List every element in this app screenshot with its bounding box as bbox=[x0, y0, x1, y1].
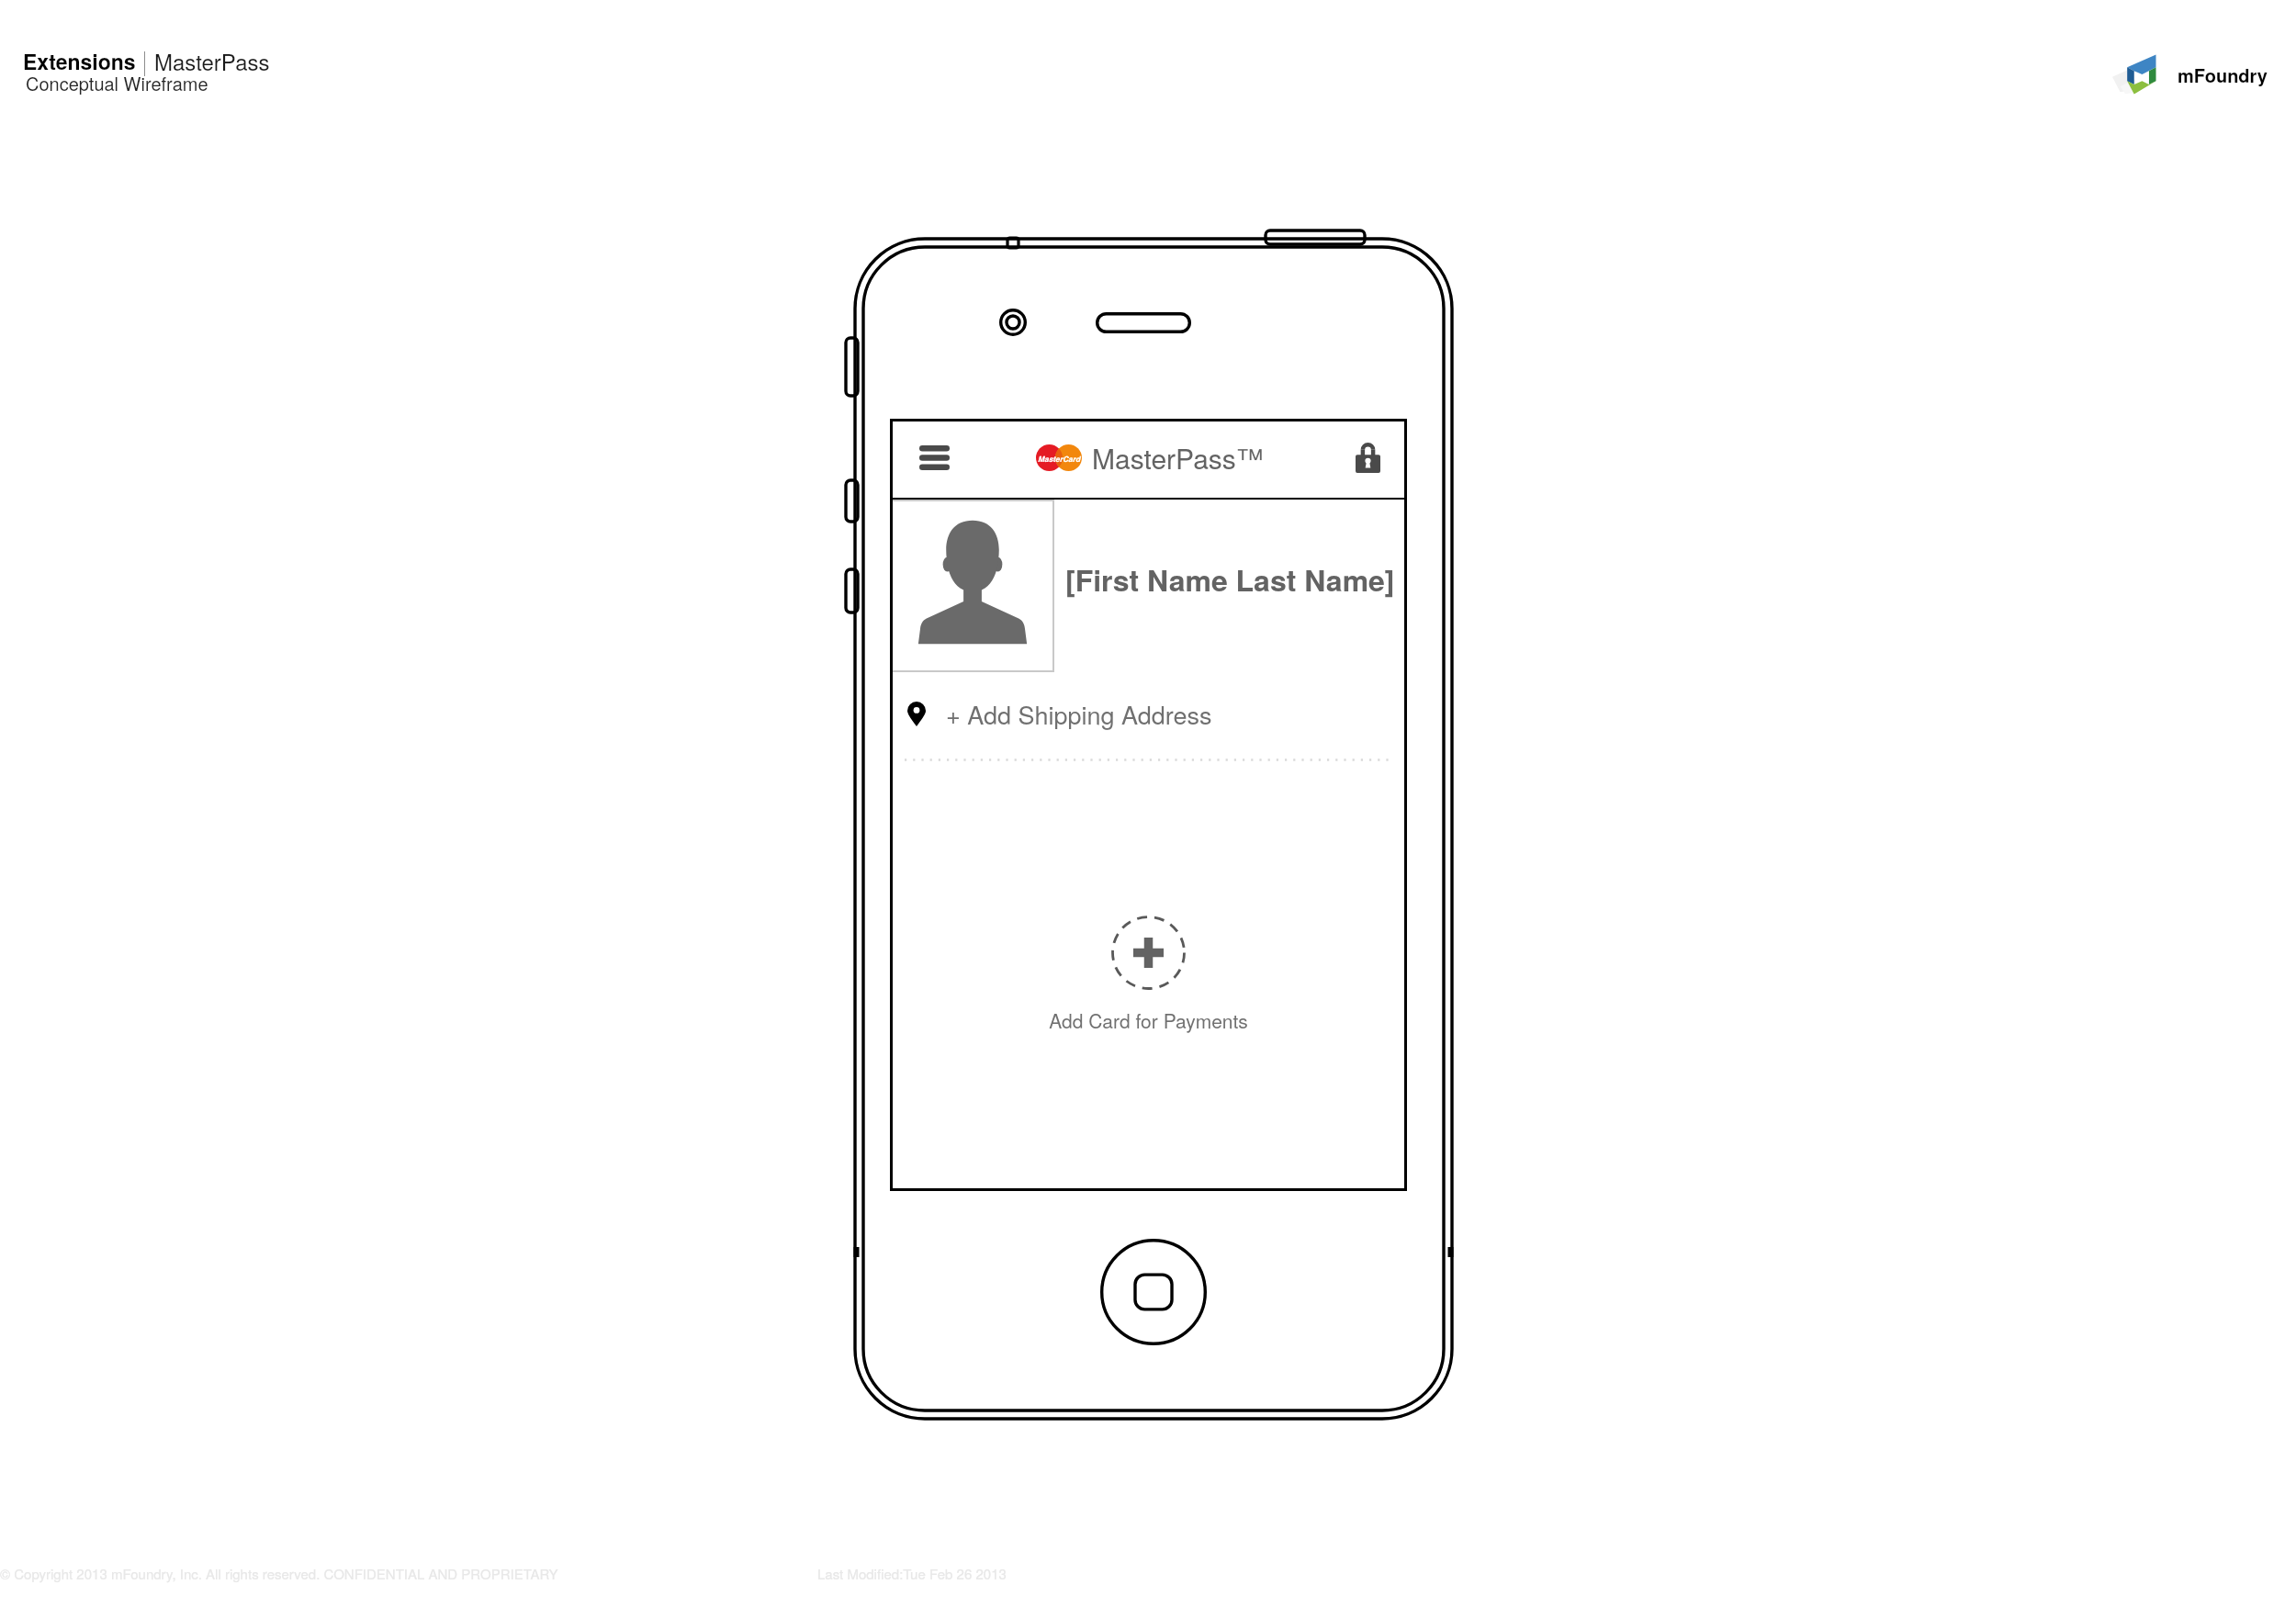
staticText: Last Modified:Tue Feb 26 2013 bbox=[817, 1564, 1007, 1583]
staticText: MasterCard bbox=[1038, 454, 1081, 465]
staticText: [First Name Last Name] bbox=[1065, 558, 1395, 601]
button[interactable]: Add Card for Payments bbox=[890, 916, 1407, 1034]
staticText: + Add Shipping Address bbox=[946, 696, 1212, 732]
staticText: Extensions bbox=[23, 46, 136, 76]
staticText: © Copyright 2013 mFoundry, Inc. All righ… bbox=[0, 1564, 558, 1583]
staticText: MasterPass™ bbox=[1092, 438, 1264, 478]
staticText: Add Card for Payments bbox=[1049, 1006, 1248, 1034]
button[interactable]: Secure bbox=[1328, 418, 1407, 497]
staticText: Conceptual Wireframe bbox=[26, 70, 208, 96]
button[interactable]: Menu bbox=[890, 418, 978, 497]
staticText: mFoundry bbox=[2178, 62, 2268, 88]
button[interactable]: + Add Shipping Address bbox=[890, 674, 1407, 753]
staticText: MasterPass bbox=[154, 45, 270, 76]
button[interactable]: Profile photo bbox=[890, 500, 1054, 672]
